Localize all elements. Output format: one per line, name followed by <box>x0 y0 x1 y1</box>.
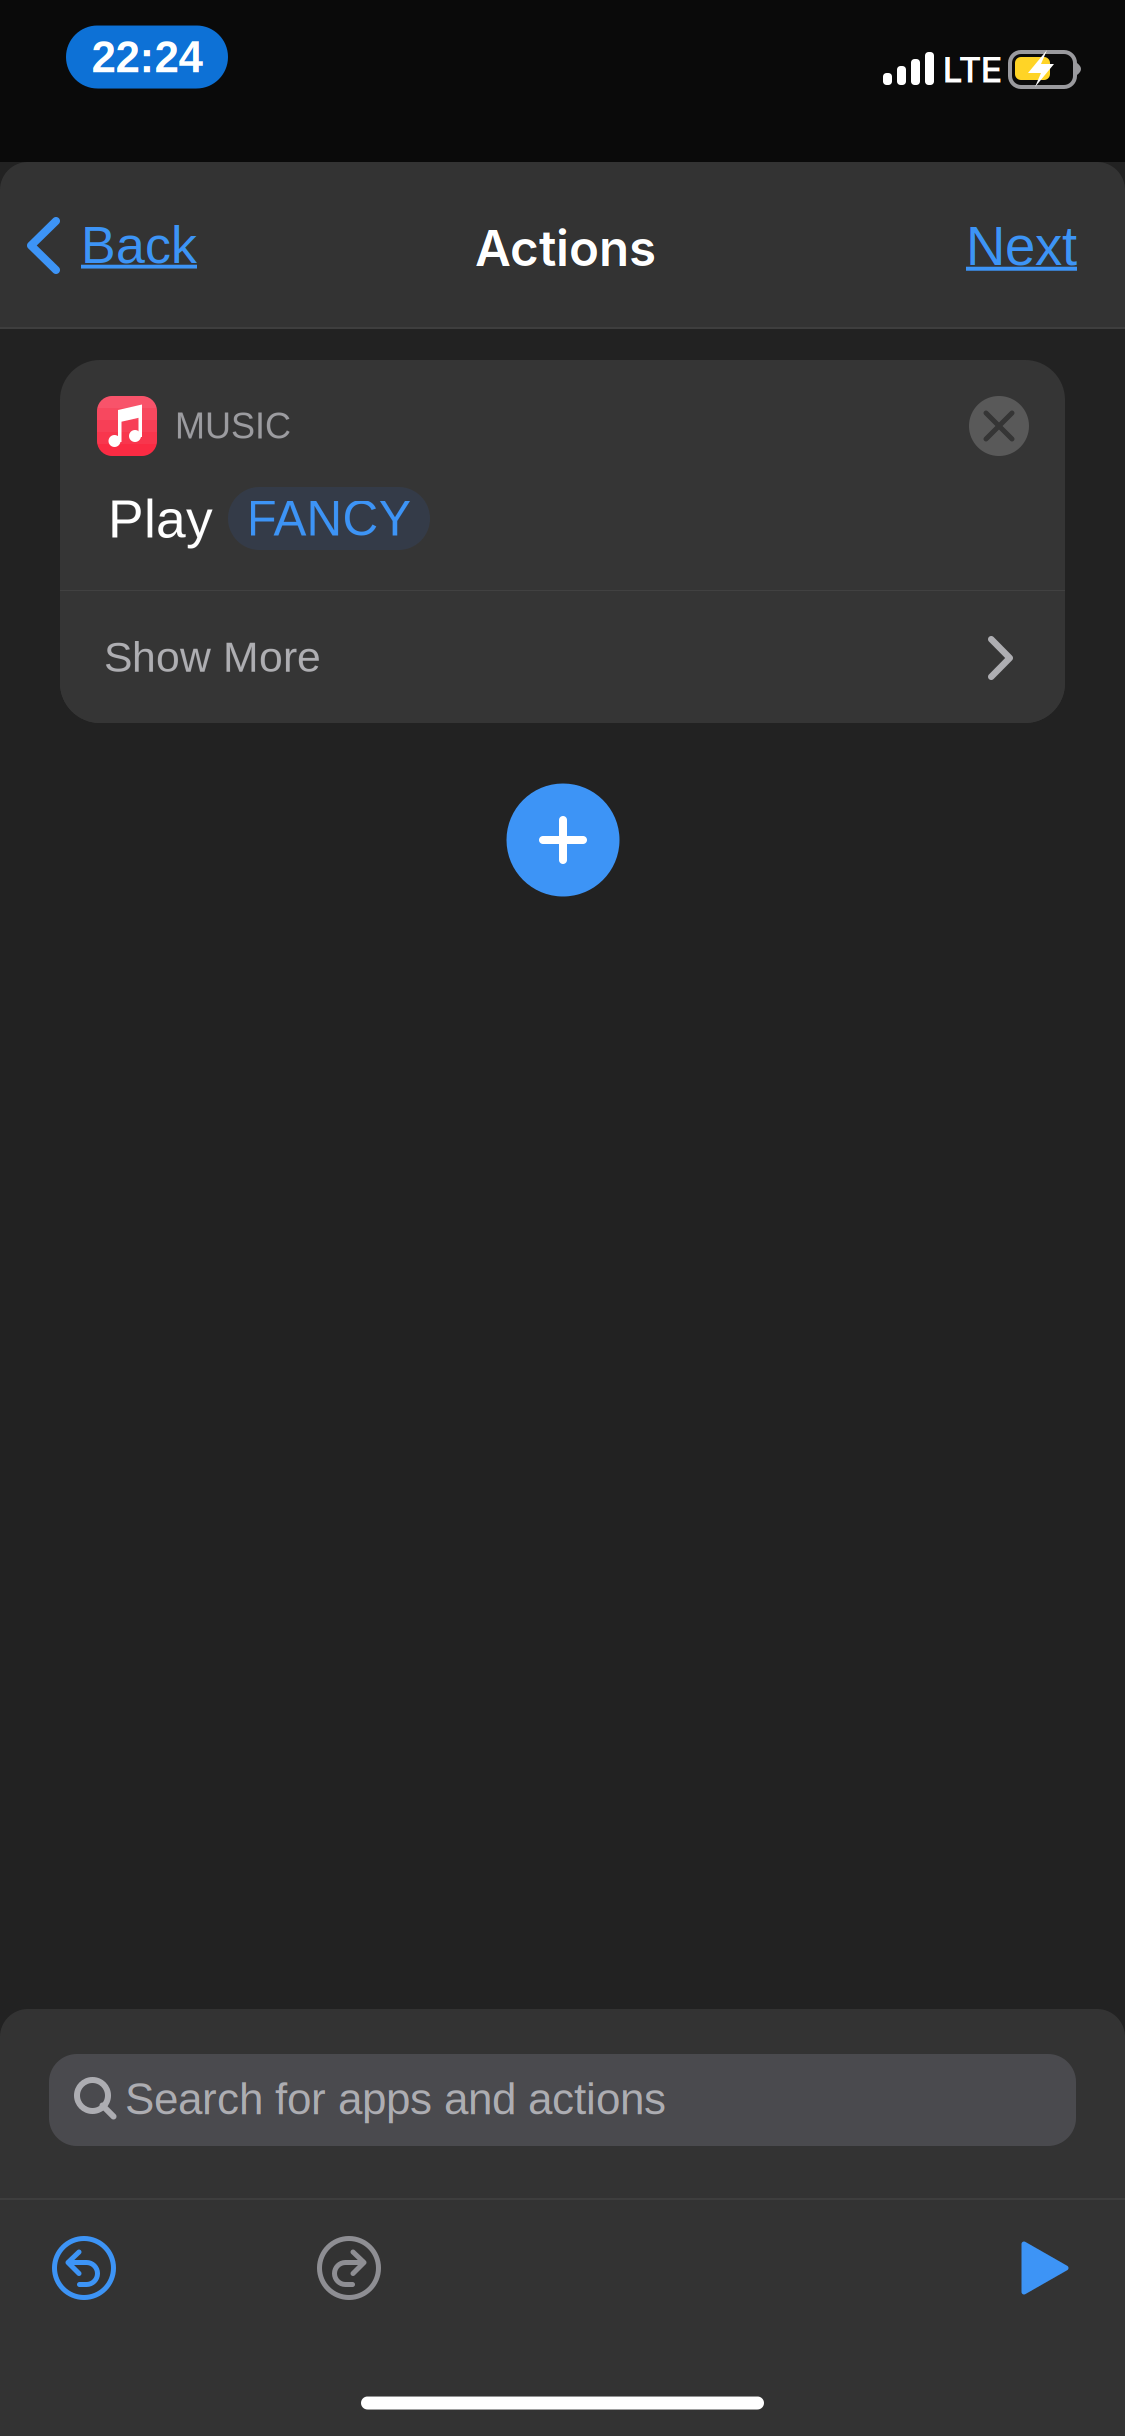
staticText: Next <box>966 215 1077 277</box>
button[interactable]: FANCY <box>228 487 430 550</box>
button[interactable]: Search for apps and actions <box>49 2054 1076 2146</box>
staticText: LTE <box>943 49 1002 91</box>
staticText: Show More <box>104 633 321 681</box>
button[interactable]: Add action <box>488 765 638 915</box>
button[interactable]: Redo <box>294 2213 404 2323</box>
staticText: Actions <box>475 218 656 278</box>
staticText: Play <box>108 489 213 549</box>
button[interactable]: Undo <box>29 2213 139 2323</box>
button[interactable]: Next <box>925 162 1125 329</box>
button[interactable]: Run shortcut <box>990 2213 1100 2323</box>
staticText: Search for apps and actions <box>125 2074 666 2124</box>
button[interactable]: Remove action <box>953 380 1045 472</box>
staticText: FANCY <box>246 491 411 546</box>
button[interactable]: Show More <box>60 591 1065 723</box>
button[interactable]: Back <box>0 162 225 329</box>
staticText: Back <box>81 216 197 274</box>
staticText: MUSIC <box>175 406 291 446</box>
staticText: 22:24 <box>91 32 202 82</box>
